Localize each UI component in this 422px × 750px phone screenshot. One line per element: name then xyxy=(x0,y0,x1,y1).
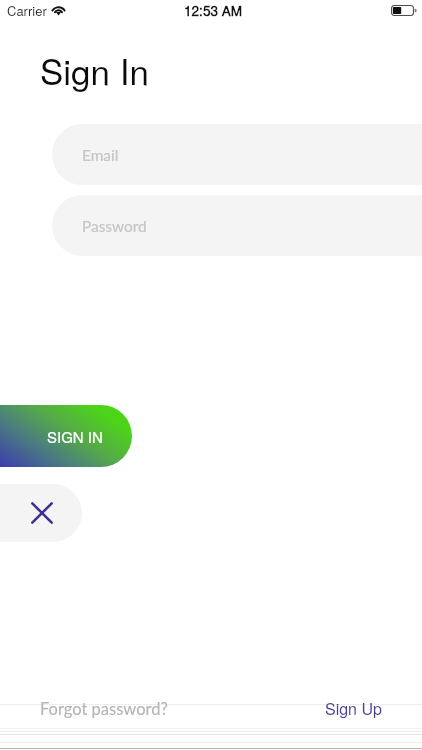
staticText: Carrier xyxy=(7,1,47,20)
staticText: Password xyxy=(82,217,147,235)
staticText: Email xyxy=(82,146,119,164)
button[interactable]: Email xyxy=(52,124,422,185)
button[interactable]: Forgot password? xyxy=(40,699,168,719)
staticText: Sign In xyxy=(40,45,149,95)
button[interactable]: SIGN IN xyxy=(0,405,132,467)
staticText: SIGN IN xyxy=(47,426,103,447)
button[interactable]: Close xyxy=(0,484,82,542)
staticText: Forgot password? xyxy=(40,699,168,719)
staticText: Sign Up xyxy=(325,697,382,720)
staticText: 12:53 AM xyxy=(184,0,243,19)
button[interactable]: Password xyxy=(52,195,422,256)
button[interactable]: Sign Up xyxy=(325,697,382,720)
